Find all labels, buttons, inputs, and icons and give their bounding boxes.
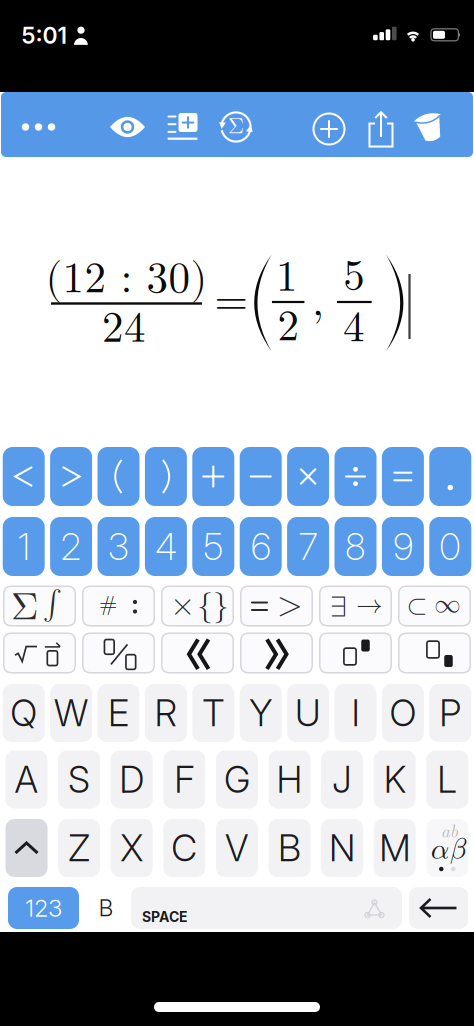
button[interactable] [166, 112, 198, 143]
button[interactable]: N [321, 819, 363, 877]
button[interactable]: 0 [429, 517, 471, 576]
button[interactable]: 4 [145, 517, 187, 576]
button[interactable] [367, 111, 395, 148]
button[interactable] [97, 447, 139, 506]
button[interactable] [398, 632, 471, 673]
staticText: ∞ [434, 591, 461, 618]
button[interactable]: R [145, 684, 187, 742]
button[interactable]: 7 [287, 517, 329, 576]
staticText: 2 [61, 524, 82, 569]
staticText: × [170, 589, 195, 621]
button[interactable]: X [111, 819, 153, 877]
button[interactable] [5, 819, 47, 877]
button[interactable] [287, 447, 329, 506]
staticText: V [225, 826, 249, 870]
staticText: J [332, 757, 352, 802]
staticText: ∫ [43, 589, 62, 618]
button[interactable]: O [382, 684, 424, 742]
button[interactable]: F [163, 750, 205, 808]
staticText: 9 [393, 524, 413, 569]
staticText: > [277, 578, 303, 624]
staticText: 0 [439, 524, 461, 569]
button[interactable]: U [287, 684, 329, 742]
button[interactable]: V [216, 819, 258, 877]
button[interactable]: Z [58, 819, 100, 877]
staticText: B [98, 894, 113, 922]
staticText: 8 [345, 524, 366, 569]
button[interactable]: ab [426, 819, 468, 877]
staticText: 𝛼𝛽 [431, 835, 466, 864]
button[interactable]: P [429, 684, 471, 742]
button[interactable]: K [374, 750, 416, 808]
staticText: L [437, 757, 457, 802]
button[interactable]: S [58, 750, 100, 808]
button[interactable] [50, 447, 92, 506]
button[interactable] [161, 632, 234, 673]
staticText: T [202, 691, 224, 735]
staticText: K [384, 757, 406, 802]
button[interactable]: M [374, 819, 416, 877]
button[interactable]: Σ [218, 109, 254, 145]
staticText: B [278, 826, 301, 870]
button[interactable]: E [97, 684, 139, 742]
button[interactable] [429, 447, 471, 506]
button[interactable]: 8 [334, 517, 376, 576]
button[interactable] [1, 92, 473, 157]
button[interactable]: > [240, 585, 313, 626]
staticText: ⊂ [406, 592, 427, 619]
button[interactable]: H [268, 750, 310, 808]
button[interactable] [409, 887, 468, 929]
staticText: O [389, 691, 416, 735]
button[interactable]: SPACE [131, 887, 402, 929]
button[interactable]: B [268, 819, 310, 877]
button[interactable]: × [161, 585, 234, 626]
button[interactable]: 6 [240, 517, 282, 576]
button[interactable] [240, 632, 313, 673]
button[interactable] [382, 447, 424, 506]
button[interactable]: B [86, 887, 126, 929]
button[interactable]: A [5, 750, 47, 808]
button[interactable]: Q [3, 684, 45, 742]
button[interactable] [18, 109, 84, 145]
button[interactable] [240, 447, 282, 506]
button[interactable] [334, 447, 376, 506]
button[interactable]: T [192, 684, 234, 742]
button[interactable]: J [321, 750, 363, 808]
button[interactable]: 9 [382, 517, 424, 576]
button[interactable]: ∃ [319, 585, 392, 626]
button[interactable]: Y [240, 684, 282, 742]
button[interactable] [3, 632, 76, 673]
button[interactable]: D [111, 750, 153, 808]
button[interactable]: W [50, 684, 92, 742]
button[interactable] [82, 632, 155, 673]
staticText: 3 [108, 524, 129, 569]
button[interactable]: 1 [3, 517, 45, 576]
staticText: # [99, 586, 117, 617]
button[interactable]: 5 [192, 517, 234, 576]
button[interactable]: I [334, 684, 376, 742]
button[interactable] [107, 109, 147, 145]
button[interactable]: 2 [50, 517, 92, 576]
button[interactable] [145, 447, 187, 506]
staticText: 6 [251, 524, 271, 569]
button[interactable] [192, 447, 234, 506]
button[interactable] [416, 112, 444, 143]
staticText: I [351, 691, 359, 735]
staticText: S [68, 757, 90, 802]
button[interactable]: 3 [97, 517, 139, 576]
staticText: → [356, 591, 383, 618]
staticText: C [171, 826, 197, 870]
button[interactable]: Σ [3, 585, 76, 626]
button[interactable] [319, 632, 392, 673]
button[interactable]: G [216, 750, 258, 808]
button[interactable]: 123 [8, 887, 79, 929]
button[interactable] [312, 112, 346, 146]
staticText: D [119, 757, 144, 802]
button[interactable]: L [426, 750, 468, 808]
button[interactable] [3, 447, 45, 506]
staticText: Y [249, 691, 272, 735]
button[interactable]: # [82, 585, 155, 626]
button[interactable]: C [163, 819, 205, 877]
staticText: Z [68, 826, 90, 870]
button[interactable]: ⊂ [398, 585, 471, 626]
